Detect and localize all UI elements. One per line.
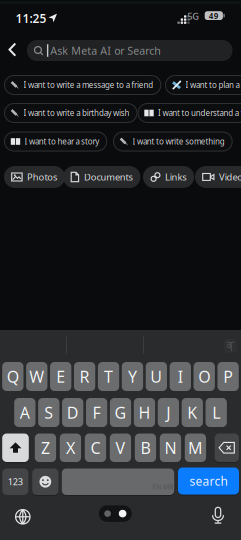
button[interactable]: I want to plan a trip bbox=[165, 75, 241, 95]
staticText: I want to understand a topic bbox=[158, 108, 241, 118]
staticText: W bbox=[29, 366, 44, 387]
button[interactable]: V bbox=[110, 433, 131, 462]
button[interactable]: I want to write a birthday wish bbox=[4, 103, 137, 123]
button[interactable]: U bbox=[146, 362, 167, 391]
button[interactable]: Dictation bbox=[207, 503, 229, 527]
button[interactable]: 123 bbox=[2, 468, 28, 495]
button[interactable]: Back bbox=[4, 39, 20, 61]
button[interactable]: F bbox=[86, 398, 107, 427]
staticText: Videos bbox=[219, 171, 241, 183]
staticText: X bbox=[66, 437, 75, 458]
staticText: J bbox=[166, 402, 170, 423]
button[interactable]: X bbox=[60, 433, 81, 462]
button[interactable]: Z bbox=[35, 433, 56, 462]
button[interactable]: I bbox=[170, 362, 191, 391]
staticText: V bbox=[115, 437, 125, 458]
staticText: 49 bbox=[209, 10, 219, 21]
button[interactable]: Input options bbox=[224, 339, 237, 352]
staticText: EN MR bbox=[152, 483, 173, 491]
button[interactable]: Links bbox=[143, 166, 194, 188]
button[interactable]: K bbox=[182, 398, 203, 427]
staticText: search bbox=[189, 473, 227, 489]
staticText: U bbox=[150, 366, 162, 387]
button[interactable]: Y bbox=[122, 362, 143, 391]
staticText: I bbox=[178, 366, 183, 387]
button[interactable]: P bbox=[217, 362, 239, 391]
button[interactable]: M bbox=[185, 433, 206, 462]
button[interactable]: T bbox=[98, 362, 119, 391]
button[interactable]: N bbox=[160, 433, 181, 462]
button[interactable]: I want to understand a topic bbox=[137, 103, 241, 123]
button[interactable]: Ask Meta AI or Search bbox=[27, 40, 232, 61]
button[interactable]: S bbox=[38, 398, 59, 427]
button[interactable]: I want to hear a story bbox=[4, 131, 107, 151]
staticText: N bbox=[164, 437, 176, 458]
button[interactable]: I want to write a message to a friend bbox=[4, 75, 161, 95]
button[interactable]: Shift bbox=[2, 433, 29, 462]
staticText: Documents bbox=[84, 171, 132, 183]
staticText: I want to write a message to a friend bbox=[23, 80, 153, 90]
button[interactable]: C bbox=[85, 433, 106, 462]
staticText: S bbox=[44, 402, 53, 423]
staticText: I want to write a birthday wish bbox=[23, 108, 129, 118]
button[interactable]: D bbox=[62, 398, 83, 427]
button[interactable]: R bbox=[74, 362, 95, 391]
staticText: I want to hear a story bbox=[24, 136, 99, 147]
button[interactable]: search bbox=[178, 467, 239, 494]
button[interactable]: G bbox=[110, 398, 131, 427]
staticText: 123 bbox=[8, 476, 23, 488]
button[interactable]: Q bbox=[2, 362, 23, 391]
staticText: O bbox=[198, 366, 210, 387]
staticText: G bbox=[114, 402, 126, 423]
button[interactable]: Documents bbox=[63, 166, 140, 188]
staticText: T bbox=[104, 366, 113, 387]
staticText: Z bbox=[41, 437, 50, 458]
staticText: F bbox=[93, 402, 101, 423]
staticText: C bbox=[90, 437, 100, 458]
button[interactable]: O bbox=[194, 362, 215, 391]
button[interactable]: A bbox=[14, 398, 35, 427]
staticText: Y bbox=[128, 366, 137, 387]
button[interactable]: Emoji bbox=[32, 468, 58, 495]
button[interactable]: Next keyboard bbox=[12, 506, 34, 528]
staticText: P bbox=[223, 366, 233, 387]
staticText: B bbox=[140, 437, 150, 458]
staticText: Photos bbox=[27, 171, 57, 183]
staticText: E bbox=[56, 366, 65, 387]
button[interactable]: I want to write something bbox=[113, 131, 233, 151]
staticText: R bbox=[80, 366, 90, 387]
button[interactable]: Delete bbox=[215, 433, 239, 462]
staticText: I want to write something bbox=[132, 136, 225, 147]
button[interactable]: L bbox=[206, 398, 227, 427]
staticText: M bbox=[188, 437, 203, 458]
staticText: Q bbox=[7, 366, 19, 387]
staticText: Ask Meta AI or Search bbox=[50, 43, 161, 58]
staticText: A bbox=[20, 402, 30, 423]
button[interactable]: H bbox=[134, 398, 155, 427]
button[interactable]: Photos bbox=[4, 166, 65, 188]
button[interactable]: W bbox=[26, 362, 47, 391]
staticText: L bbox=[212, 402, 220, 423]
button[interactable]: J bbox=[158, 398, 179, 427]
button[interactable]: E bbox=[50, 362, 71, 391]
staticText: H bbox=[138, 402, 150, 423]
staticText: 5G bbox=[187, 10, 199, 22]
staticText: K bbox=[187, 402, 197, 423]
staticText: 11:25 bbox=[15, 10, 46, 26]
button[interactable]: Videos bbox=[195, 166, 241, 188]
staticText: Links bbox=[165, 171, 186, 183]
staticText: D bbox=[67, 402, 79, 423]
button[interactable]: Space bbox=[62, 468, 174, 495]
staticText: I want to plan a trip bbox=[185, 80, 241, 90]
button[interactable]: B bbox=[135, 433, 156, 462]
